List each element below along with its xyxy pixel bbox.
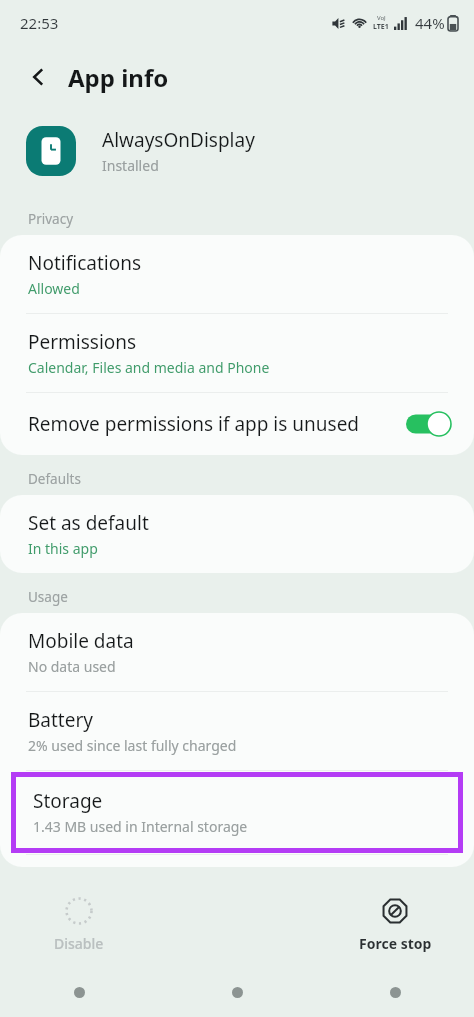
button[interactable]: Remove permissions if app is unused [0,393,474,455]
staticText: Storage [33,788,103,814]
button[interactable]: Permissions [0,314,474,392]
staticText: Battery [28,707,93,733]
staticText: Calendar, Files and media and Phone [28,358,270,377]
button[interactable]: Back [316,967,474,1017]
staticText: Usage [28,588,68,606]
staticText: VoЈ [377,14,386,22]
staticText: In this app [28,539,98,558]
staticText: Defaults [28,470,81,488]
staticText: 1.43 MB used in Internal storage [33,817,248,836]
button[interactable]: Mobile data [0,613,474,691]
button[interactable]: Recents [0,967,158,1017]
staticText: Disable [54,934,104,953]
staticText: 44% [415,13,445,33]
button[interactable]: Disable [0,883,158,967]
staticText: Force stop [359,934,432,953]
staticText: Permissions [28,329,137,355]
staticText: Allowed [28,279,80,298]
staticText: Notifications [28,250,142,276]
staticText: Mobile data [28,628,134,654]
staticText: Installed [102,156,159,175]
button[interactable]: Storage [11,772,463,853]
button[interactable]: Battery [0,692,474,770]
staticText: Set as default [28,510,149,536]
staticText: 2% used since last fully charged [28,736,237,755]
button[interactable]: Back [18,56,60,98]
staticText: Remove permissions if app is unused [28,411,406,437]
button[interactable]: Force stop [316,883,474,967]
staticText: LTE1 [373,22,389,32]
button[interactable]: Home [158,967,316,1017]
button[interactable]: Set as default [0,495,474,573]
staticText: No data used [28,657,116,676]
staticText: Privacy [28,210,74,228]
staticText: App info [68,61,169,94]
staticText: 22:53 [20,13,59,33]
button[interactable]: Notifications [0,235,474,313]
staticText: AlwaysOnDisplay [102,127,255,153]
